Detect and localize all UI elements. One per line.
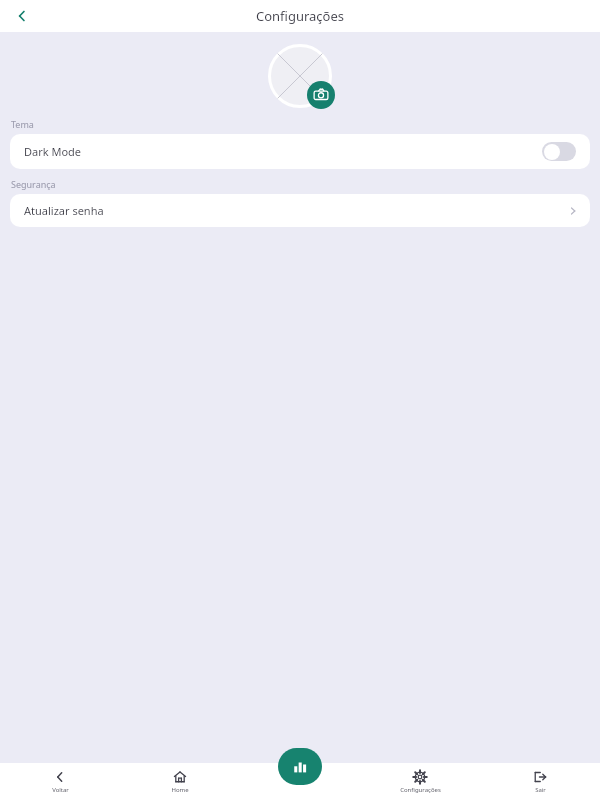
staticText: Atualizar senha (24, 203, 104, 218)
staticText: Home (171, 786, 189, 794)
staticText: Dark Mode (24, 144, 82, 159)
button[interactable]: Voltar (0, 763, 120, 800)
button[interactable]: Alterar foto (307, 81, 335, 109)
button[interactable]: Sair (480, 763, 600, 800)
staticText: Segurança (11, 178, 56, 190)
button[interactable]: Voltar (8, 2, 36, 30)
button[interactable]: Atualizar senha (10, 194, 590, 227)
staticText: Sair (535, 786, 546, 794)
staticText: Voltar (52, 786, 69, 794)
staticText: Configurações (256, 7, 345, 25)
staticText: Configurações (400, 786, 441, 794)
button[interactable]: Dark Mode (542, 142, 576, 161)
button[interactable]: Dark Mode (10, 134, 590, 169)
staticText: Tema (11, 118, 34, 130)
button[interactable]: Relatórios (278, 748, 322, 785)
button[interactable]: Home (120, 763, 240, 800)
button[interactable]: Configurações (360, 763, 480, 800)
